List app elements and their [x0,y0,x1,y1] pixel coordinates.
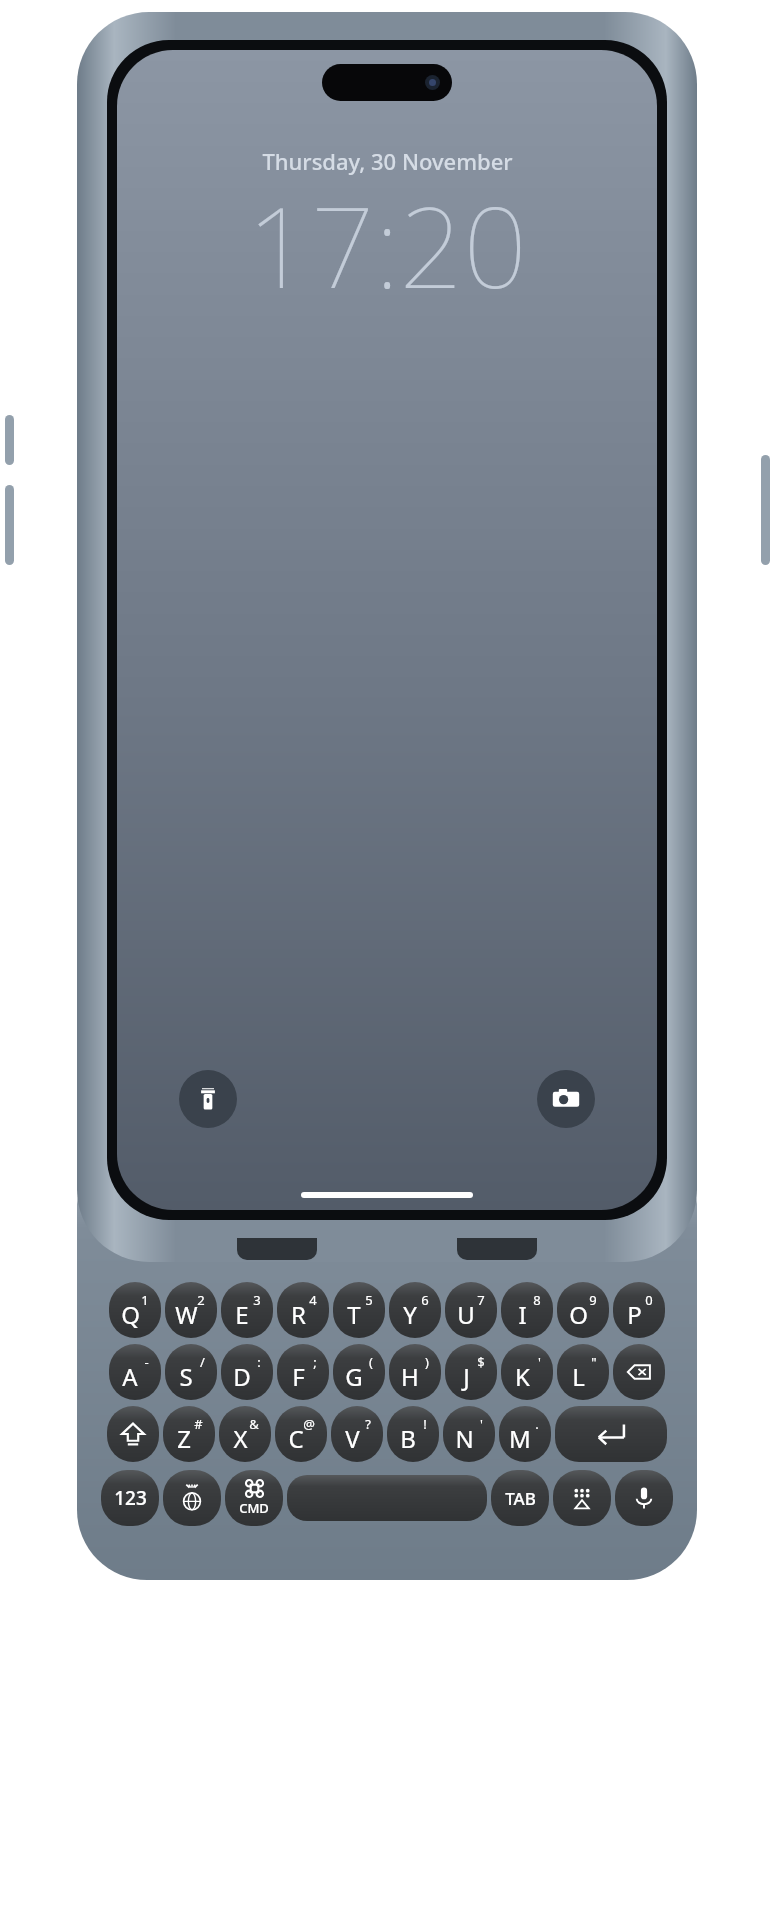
button[interactable]: C [275,1406,327,1462]
staticText: A [122,1360,138,1393]
staticText: K [515,1360,530,1393]
button[interactable]: K [501,1344,553,1400]
staticText: ? [365,1415,371,1433]
other: Power [761,455,770,565]
staticText: N [455,1422,474,1455]
staticText: W [175,1298,198,1331]
button[interactable]: TAB [491,1470,549,1526]
button[interactable]: A [109,1344,161,1400]
button[interactable] [287,1475,487,1521]
staticText: C [288,1422,304,1455]
staticText: 9 [589,1291,597,1309]
button[interactable]: F [277,1344,329,1400]
staticText: 17:20 [247,168,527,321]
staticText: P [627,1298,642,1331]
staticText: 2 [197,1291,205,1309]
staticText: 1 [141,1291,149,1309]
button[interactable]: J [445,1344,497,1400]
button[interactable]: O [557,1282,609,1338]
button[interactable] [555,1406,667,1462]
staticText: L [572,1360,585,1393]
staticText: T [347,1298,361,1331]
button[interactable]: Camera [537,1070,595,1128]
staticText: & [249,1415,259,1433]
staticText: O [569,1298,588,1331]
button[interactable]: H [389,1344,441,1400]
staticText: S [179,1360,193,1393]
button[interactable] [107,1406,159,1462]
staticText: 4 [309,1291,317,1309]
button[interactable] [613,1344,665,1400]
staticText: 0 [645,1291,653,1309]
button[interactable]: X [219,1406,271,1462]
button[interactable] [615,1470,673,1526]
staticText: . [535,1415,539,1433]
staticText: Thursday, 30 November [262,146,513,176]
staticText: ( [369,1353,373,1371]
staticText: 7 [477,1291,485,1309]
staticText: X [233,1422,248,1455]
staticText: M [509,1422,531,1455]
staticText: " [591,1353,597,1371]
other: Volume down [5,485,14,565]
button[interactable]: Z [163,1406,215,1462]
staticText: 8 [533,1291,541,1309]
staticText: ' [480,1415,483,1433]
button[interactable]: W [165,1282,217,1338]
staticText: ' [538,1353,541,1371]
button[interactable]: Q [109,1282,161,1338]
button[interactable]: S [165,1344,217,1400]
staticText: B [400,1422,416,1455]
staticText: D [233,1360,251,1393]
button[interactable]: P [613,1282,665,1338]
button[interactable]: N [443,1406,495,1462]
button[interactable]: T [333,1282,385,1338]
staticText: 5 [365,1291,373,1309]
button[interactable]: I [501,1282,553,1338]
button[interactable]: U [445,1282,497,1338]
staticText: U [457,1298,475,1331]
staticText: 6 [421,1291,429,1309]
staticText: # [194,1415,203,1433]
staticText: Q [121,1298,140,1331]
staticText: Z [177,1422,191,1455]
button[interactable]: R [277,1282,329,1338]
staticText: ; [313,1353,317,1371]
staticText: : [257,1353,261,1371]
button[interactable]: 123 [101,1470,159,1526]
button[interactable]: Torch [179,1070,237,1128]
other: Volume up [5,415,14,465]
staticText: R [291,1298,306,1331]
button[interactable]: D [221,1344,273,1400]
staticText: @ [303,1415,315,1433]
staticText: CMD [239,1499,269,1517]
staticText: ) [425,1353,429,1371]
staticText: G [345,1360,363,1393]
staticText: E [235,1298,249,1331]
staticText: Y [403,1298,417,1331]
button[interactable]: V [331,1406,383,1462]
staticText: I [518,1298,527,1331]
staticText: 3 [253,1291,261,1309]
staticText: H [401,1360,419,1393]
button[interactable]: E [221,1282,273,1338]
button[interactable] [553,1470,611,1526]
staticText: ! [423,1415,427,1433]
staticText: $ [477,1353,485,1371]
staticText: / [200,1353,205,1371]
staticText: - [144,1353,149,1371]
staticText: F [292,1360,305,1393]
button[interactable]: M [499,1406,551,1462]
button[interactable]: B [387,1406,439,1462]
button[interactable]: CMD [225,1470,283,1526]
button[interactable]: Y [389,1282,441,1338]
button[interactable] [163,1470,221,1526]
staticText: 123 [114,1485,147,1511]
staticText: V [345,1422,360,1455]
staticText: TAB [505,1487,536,1510]
button[interactable]: G [333,1344,385,1400]
staticText: J [463,1360,470,1393]
button[interactable]: L [557,1344,609,1400]
